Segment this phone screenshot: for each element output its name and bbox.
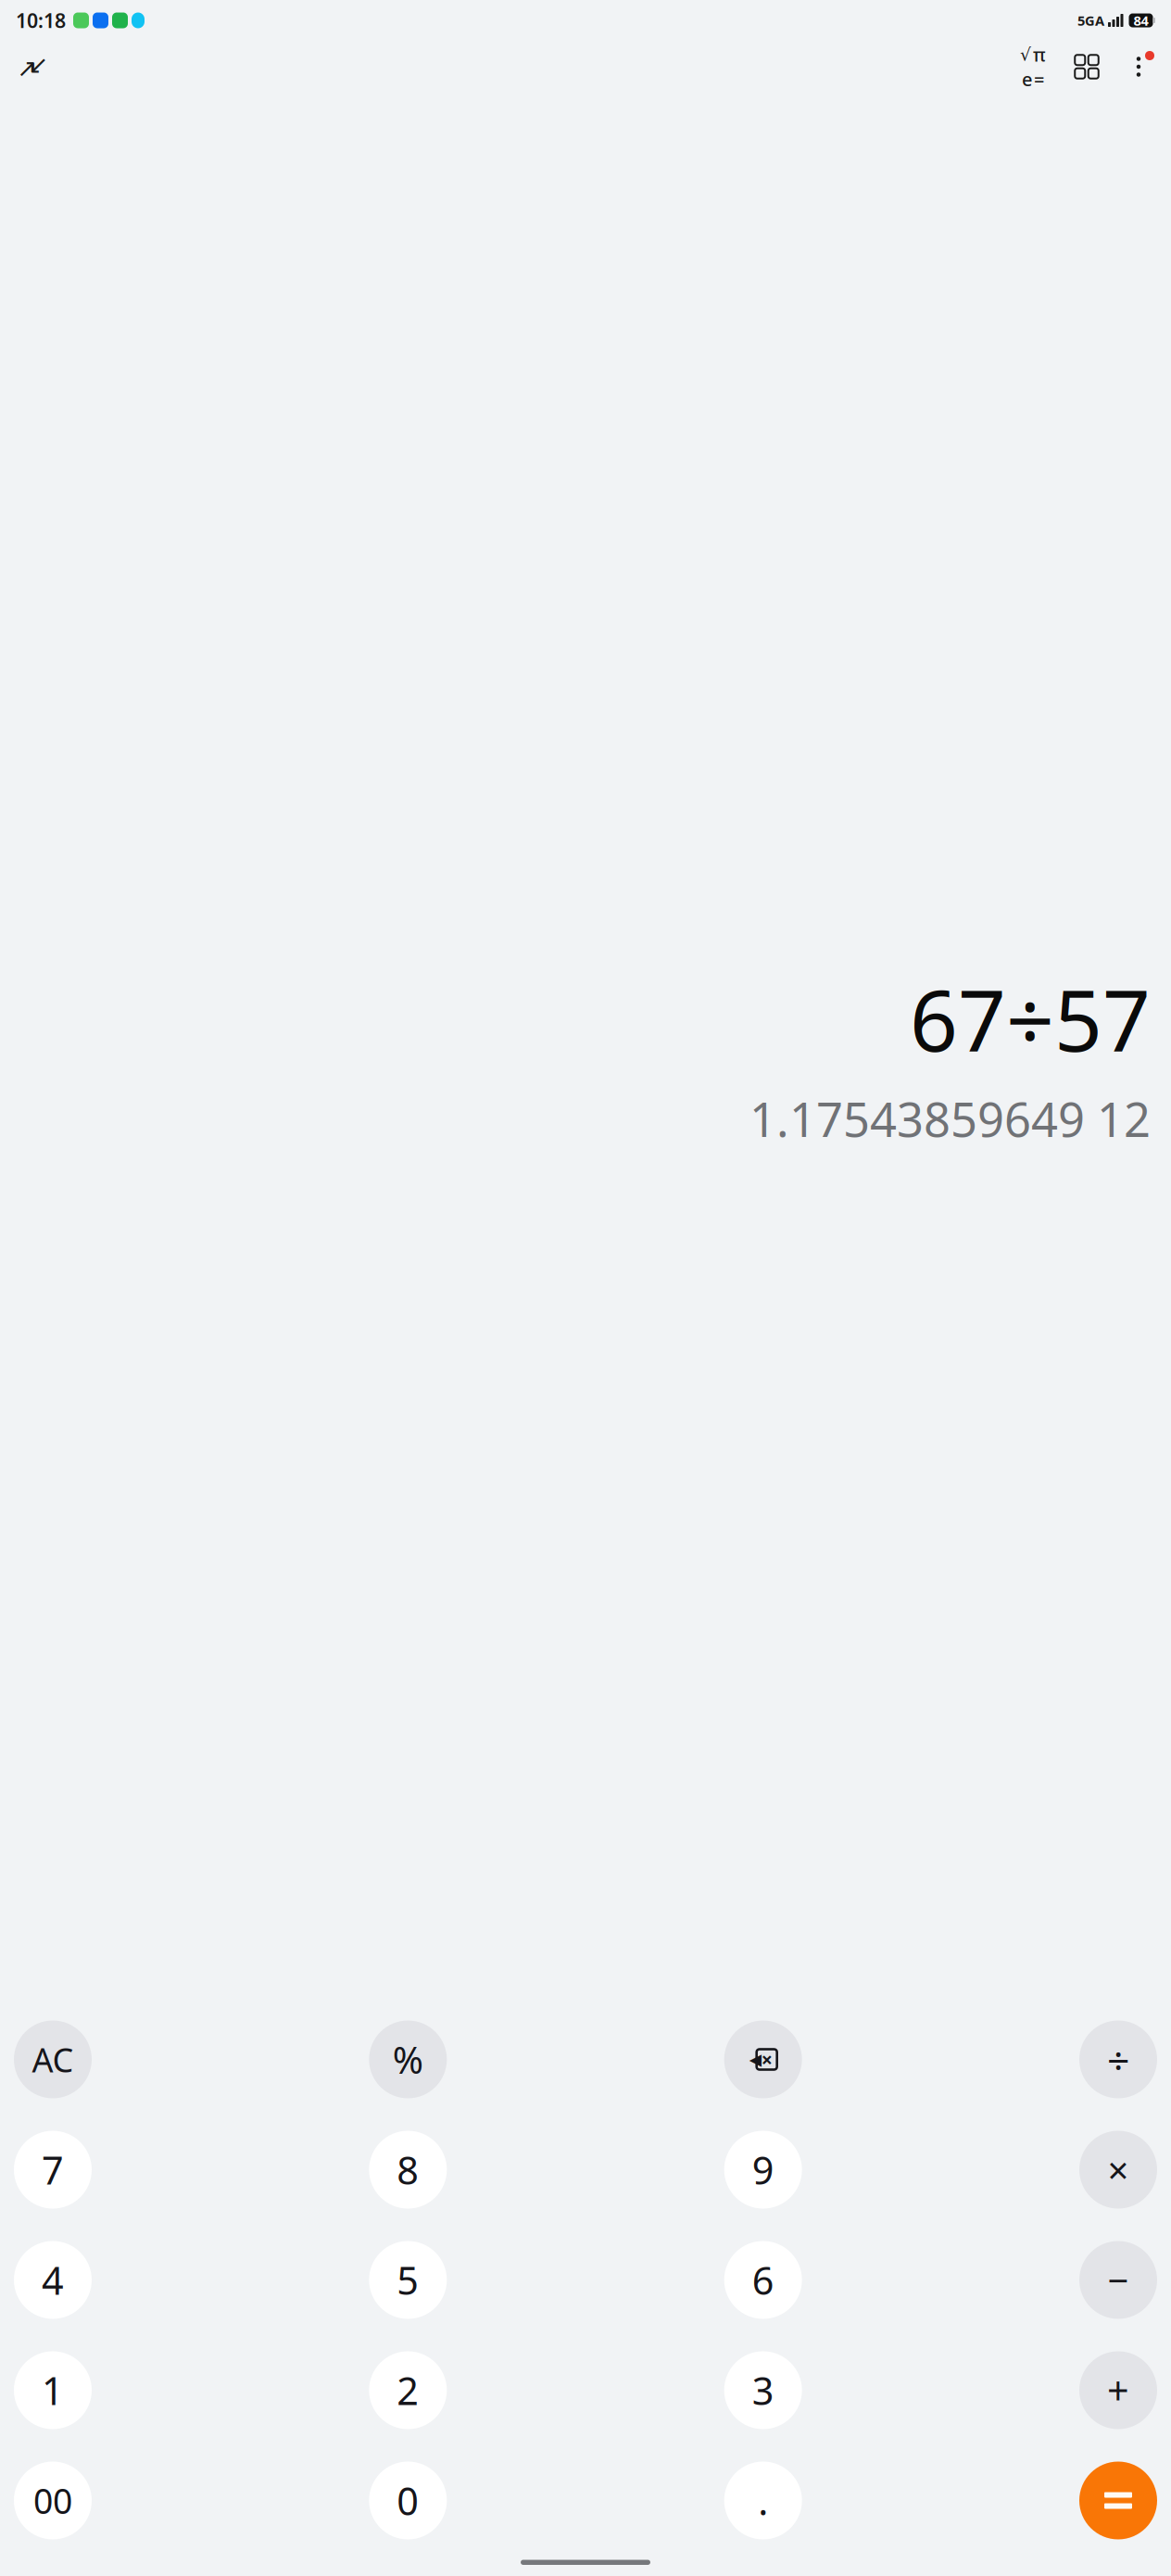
staticText: −	[1108, 2255, 1129, 2305]
staticText: ×	[1108, 2145, 1129, 2194]
staticText: AC	[32, 2037, 74, 2082]
staticText: +	[1107, 2365, 1129, 2416]
button[interactable]: 6	[724, 2241, 802, 2319]
button[interactable]: Backspace	[724, 2020, 802, 2098]
button[interactable]: Unit converter	[1065, 45, 1108, 88]
button[interactable]: 1	[14, 2351, 92, 2429]
button[interactable]: 0	[369, 2462, 447, 2539]
button[interactable]: %	[369, 2020, 447, 2098]
staticText: 5GA	[1077, 11, 1104, 29]
button[interactable]: .	[724, 2462, 802, 2539]
button[interactable]: 5	[369, 2241, 447, 2319]
staticText: =	[1034, 67, 1044, 91]
staticText: 3	[752, 2365, 774, 2416]
staticText: ÷	[1107, 2033, 1129, 2086]
staticText: 10:18	[16, 7, 66, 33]
button[interactable]: 8	[369, 2131, 447, 2209]
staticText: 67÷57	[910, 963, 1151, 1075]
button[interactable]: −	[1079, 2241, 1157, 2319]
staticText: 2	[397, 2365, 419, 2416]
staticText: π	[1033, 42, 1046, 67]
staticText: 4	[42, 2255, 64, 2305]
button[interactable]: 4	[14, 2241, 92, 2319]
button[interactable]: Equals	[1079, 2462, 1157, 2539]
button[interactable]: +	[1079, 2351, 1157, 2429]
staticText: ◀	[749, 2050, 761, 2069]
staticText: .	[758, 2475, 768, 2526]
button[interactable]: ÷	[1079, 2020, 1157, 2098]
staticText: 0	[397, 2475, 419, 2526]
button[interactable]: 7	[14, 2131, 92, 2209]
staticText: ×	[761, 2046, 772, 2072]
staticText: e	[1022, 67, 1032, 91]
button[interactable]: AC	[14, 2020, 92, 2098]
button[interactable]: 2	[369, 2351, 447, 2429]
staticText: %	[393, 2035, 423, 2084]
button[interactable]: Scientific mode	[1010, 45, 1056, 88]
staticText: 9	[752, 2144, 774, 2195]
staticText: 8	[397, 2144, 419, 2195]
staticText: 00	[33, 2478, 72, 2523]
button[interactable]: More options	[1117, 45, 1160, 88]
staticText: 7	[42, 2144, 64, 2195]
button[interactable]: Collapse	[11, 45, 54, 88]
staticText: 84	[1133, 11, 1148, 29]
staticText: 1	[42, 2365, 64, 2416]
staticText: √	[1020, 45, 1031, 64]
button[interactable]: 3	[724, 2351, 802, 2429]
staticText: 5	[397, 2255, 419, 2305]
staticText: ↗	[17, 54, 37, 82]
button[interactable]: ×	[1079, 2131, 1157, 2209]
button[interactable]: 9	[724, 2131, 802, 2209]
button[interactable]: 00	[14, 2462, 92, 2539]
staticText: 1.17543859649 12	[749, 1088, 1151, 1150]
staticText: ↙	[28, 51, 48, 79]
staticText: 6	[752, 2255, 774, 2305]
